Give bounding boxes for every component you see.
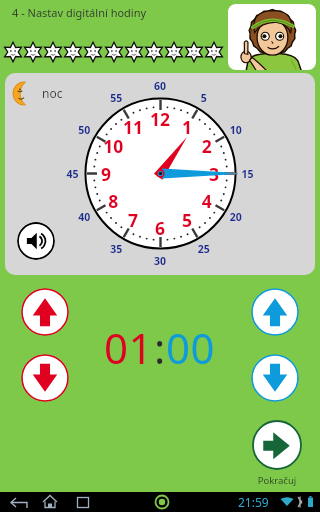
button[interactable]: Minute up: [251, 288, 299, 336]
staticText: Pokračuj: [251, 474, 303, 487]
button[interactable]: Play sound: [17, 222, 55, 260]
staticText: noc: [42, 85, 63, 101]
staticText: 4 - Nastav digitální hodiny: [12, 5, 147, 20]
staticText: 21:59: [238, 494, 269, 510]
button[interactable]: Hour down: [21, 354, 69, 402]
button[interactable]: Character: [228, 4, 316, 70]
button[interactable]: Minute down: [251, 354, 299, 402]
button[interactable]: Hour up: [21, 288, 69, 336]
button[interactable]: Pokračuj: [251, 420, 303, 487]
